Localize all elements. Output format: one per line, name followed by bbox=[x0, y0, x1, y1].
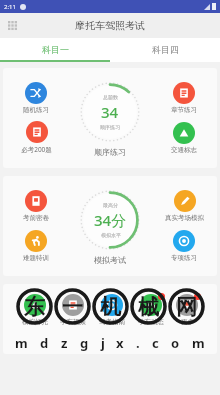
button[interactable]: 科目四 bbox=[110, 38, 220, 60]
button[interactable]: 顺序练习 bbox=[78, 80, 142, 144]
staticText: 34分 bbox=[94, 210, 127, 230]
button[interactable]: 更多 bbox=[176, 294, 198, 326]
button[interactable]: 模拟灯光 bbox=[22, 294, 48, 326]
button[interactable]: 章节练习 bbox=[171, 82, 197, 114]
staticText: 随机练习 bbox=[23, 106, 49, 114]
button[interactable]: 模拟考试 bbox=[78, 188, 142, 252]
staticText: 34 bbox=[101, 102, 119, 122]
staticText: 难题特训 bbox=[23, 254, 49, 262]
staticText: 东 bbox=[24, 294, 45, 320]
button[interactable]: 学车动态 bbox=[138, 294, 164, 326]
button[interactable]: 专项练习 bbox=[171, 230, 197, 262]
button[interactable]: 难题特训 bbox=[23, 230, 49, 262]
staticText: z bbox=[61, 334, 68, 352]
button[interactable]: 科目一 bbox=[0, 38, 110, 60]
button[interactable]: 交通标志 bbox=[171, 122, 197, 154]
staticText: 章节练习 bbox=[171, 106, 197, 114]
button[interactable]: 考前密卷 bbox=[23, 190, 49, 222]
button[interactable]: 随机练习 bbox=[23, 82, 49, 114]
staticText: 学车视频 bbox=[60, 318, 86, 326]
staticText: 学车动态 bbox=[138, 318, 164, 326]
staticText: 2:11 bbox=[4, 3, 16, 11]
staticText: 模拟灯光 bbox=[22, 318, 48, 326]
staticText: 必考200题 bbox=[21, 145, 52, 154]
staticText: . bbox=[136, 334, 140, 352]
staticText: x bbox=[116, 334, 124, 352]
staticText: o bbox=[171, 334, 180, 352]
staticText: 交通标志 bbox=[171, 146, 197, 154]
staticText: 真实考场模拟 bbox=[165, 214, 204, 222]
staticText: 专项练习 bbox=[171, 254, 197, 262]
staticText: 最高分 bbox=[103, 202, 118, 208]
staticText: 一 bbox=[62, 294, 83, 320]
button[interactable]: Menu bbox=[6, 19, 20, 33]
staticText: 机 bbox=[100, 294, 121, 320]
staticText: 模拟考试 bbox=[94, 255, 126, 265]
staticText: c bbox=[152, 334, 159, 352]
button[interactable]: 学车视频 bbox=[60, 294, 86, 326]
staticText: 科目四 bbox=[152, 44, 179, 55]
staticText: 科目一 bbox=[42, 44, 69, 55]
button[interactable]: 真实考场模拟 bbox=[165, 190, 204, 222]
staticText: 顺序练习 bbox=[94, 147, 126, 157]
staticText: d bbox=[40, 334, 49, 352]
staticText: j bbox=[101, 334, 105, 352]
staticText: 总题数 bbox=[103, 94, 118, 100]
staticText: 驾考指南 bbox=[99, 318, 125, 326]
button[interactable]: 驾考指南 bbox=[99, 294, 125, 326]
staticText: 考前密卷 bbox=[23, 214, 49, 222]
button[interactable]: 必考200题 bbox=[21, 121, 52, 154]
staticText: g bbox=[80, 334, 89, 352]
staticText: 摩托车驾照考试 bbox=[75, 19, 145, 32]
staticText: 更多 bbox=[181, 318, 194, 326]
staticText: 顺序练习 bbox=[100, 124, 120, 130]
staticText: m bbox=[15, 334, 28, 352]
staticText: 网 bbox=[176, 294, 197, 320]
staticText: 械 bbox=[138, 294, 159, 320]
staticText: 模拟水平 bbox=[101, 232, 121, 238]
staticText: m bbox=[192, 334, 205, 352]
